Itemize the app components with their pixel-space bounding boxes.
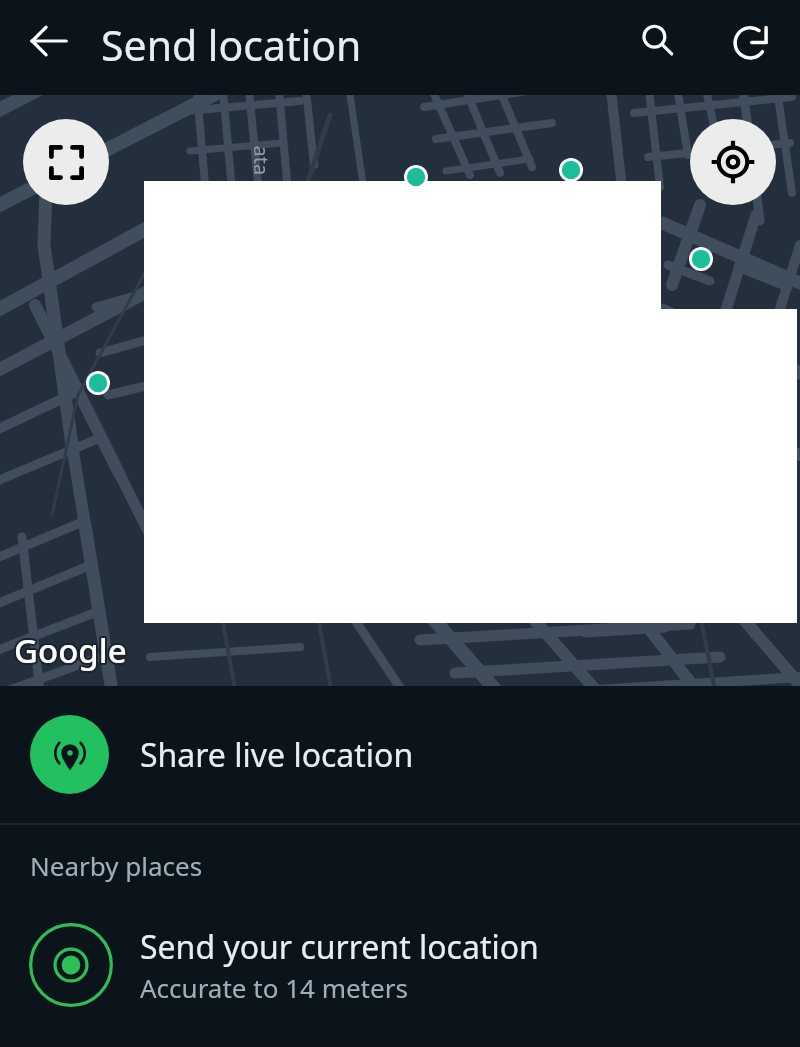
- button[interactable]: Refresh: [718, 7, 786, 75]
- staticText: Accurate to 14 meters: [140, 970, 408, 1005]
- button[interactable]: Fullscreen: [23, 119, 109, 205]
- staticText: Share live location: [140, 733, 414, 777]
- staticText: Google: [14, 628, 127, 673]
- staticText: Google: [12, 627, 125, 672]
- button[interactable]: Search: [624, 7, 692, 75]
- staticText: Google: [13, 626, 126, 671]
- button[interactable]: Share live location: [0, 686, 800, 823]
- staticText: Google: [15, 626, 128, 671]
- staticText: Google: [13, 630, 126, 675]
- staticText: Send your current location: [140, 925, 539, 969]
- button[interactable]: Back: [15, 7, 83, 75]
- staticText: Google: [14, 627, 127, 672]
- staticText: Google: [15, 630, 128, 675]
- staticText: Google: [15, 628, 128, 673]
- staticText: Google: [16, 629, 129, 674]
- staticText: Google: [15, 629, 128, 674]
- staticText: Google: [15, 627, 128, 672]
- staticText: Google: [16, 627, 129, 672]
- button[interactable]: My location: [690, 119, 776, 205]
- button[interactable]: Send your current location: [0, 905, 800, 1025]
- staticText: Google: [12, 628, 125, 673]
- staticText: Google: [16, 628, 129, 673]
- staticText: Google: [13, 628, 126, 673]
- staticText: Send location: [101, 17, 362, 73]
- staticText: Google: [13, 627, 126, 672]
- staticText: Google: [14, 629, 127, 674]
- staticText: ata: [247, 145, 274, 175]
- staticText: Google: [14, 630, 127, 675]
- staticText: Google: [12, 629, 125, 674]
- staticText: Google: [13, 629, 126, 674]
- staticText: Nearby places: [30, 848, 203, 883]
- staticText: Google: [14, 626, 127, 671]
